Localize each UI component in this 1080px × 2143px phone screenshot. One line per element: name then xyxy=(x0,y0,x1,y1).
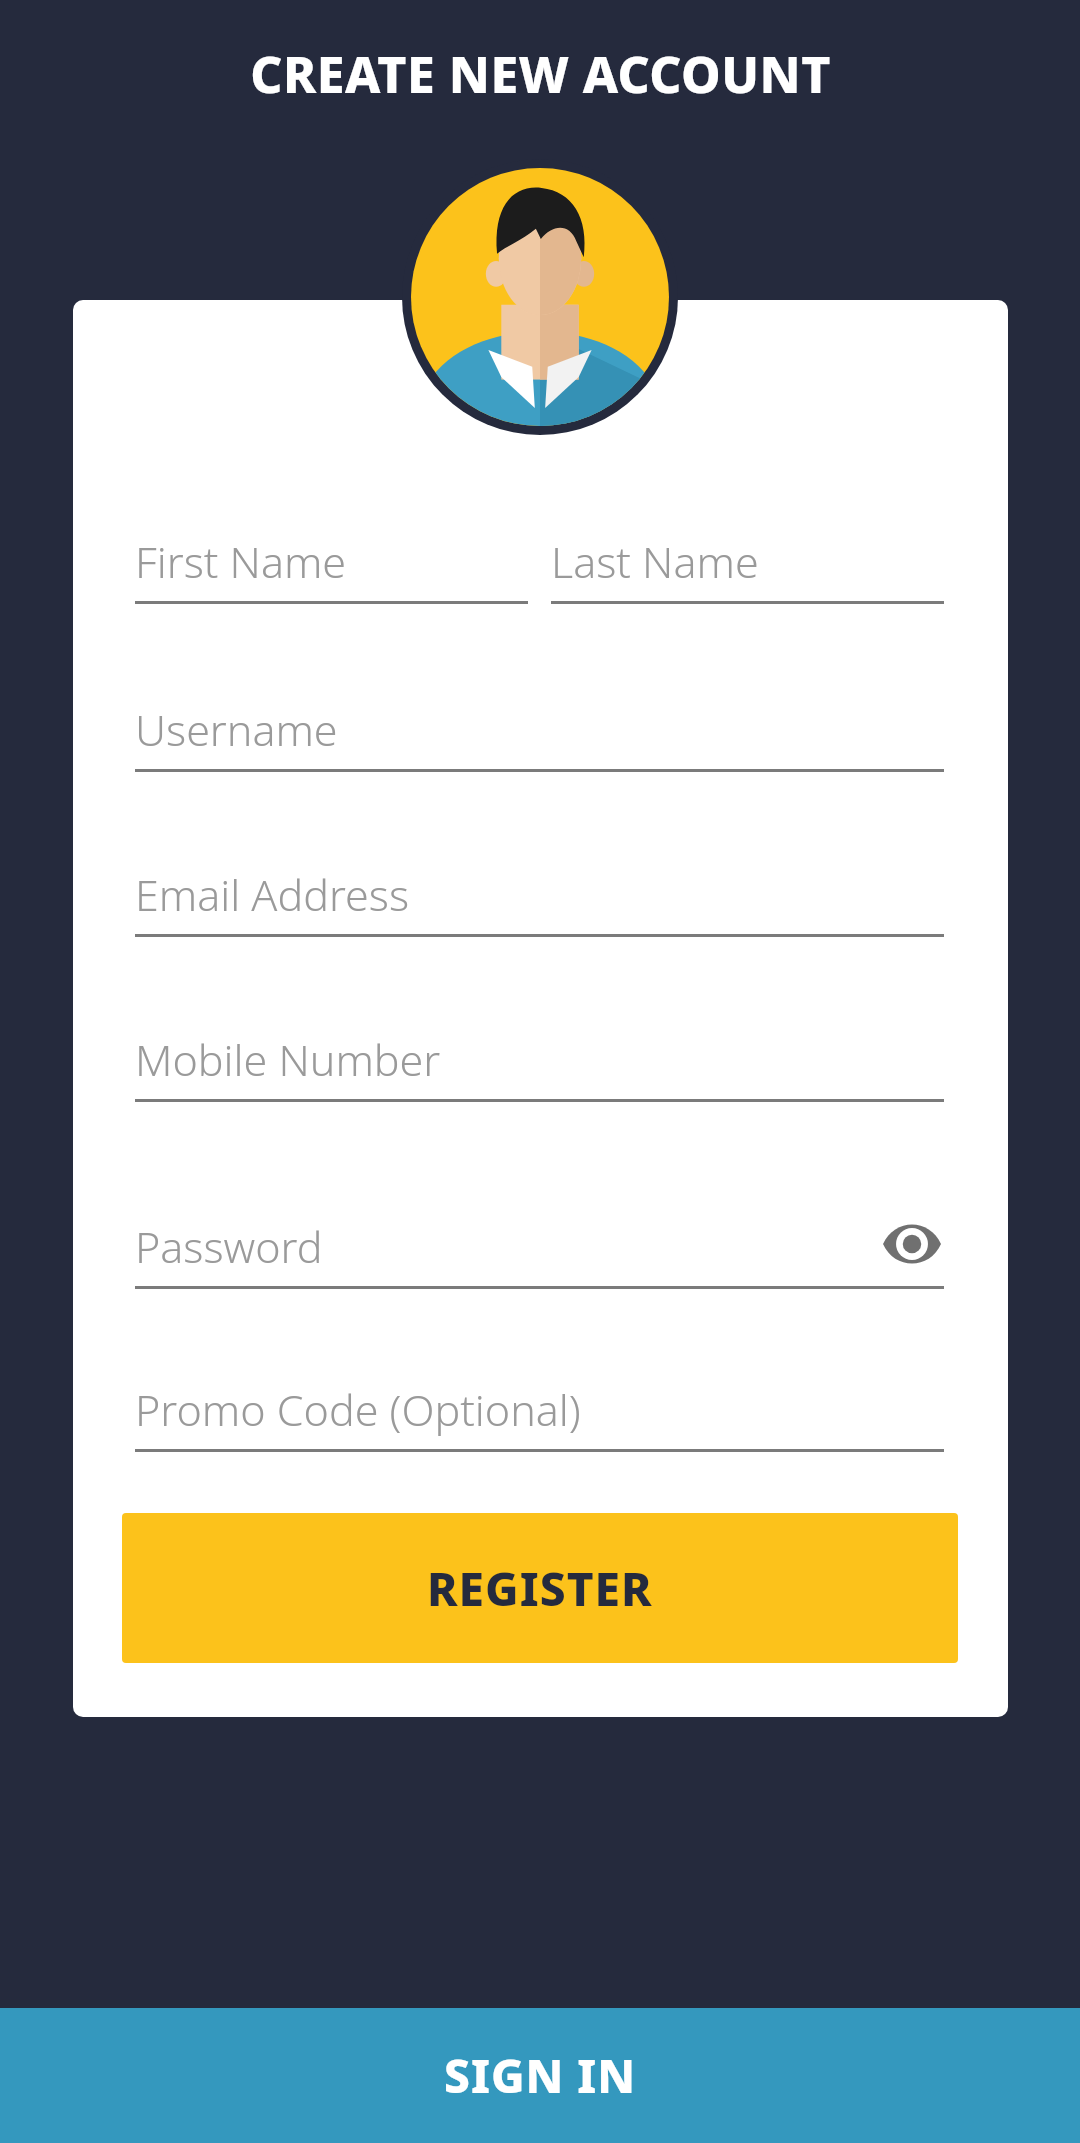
button[interactable]: First Name xyxy=(135,526,528,604)
button[interactable]: Username xyxy=(135,694,944,772)
button[interactable]: REGISTER xyxy=(122,1513,958,1663)
button[interactable]: Show password xyxy=(880,1212,944,1276)
button[interactable]: Profile photo xyxy=(402,159,678,435)
staticText: Username xyxy=(135,700,338,759)
button[interactable]: Mobile Number xyxy=(135,1024,944,1102)
staticText: Last Name xyxy=(551,532,759,591)
staticText: First Name xyxy=(135,532,347,591)
staticText: REGISTER xyxy=(427,1557,653,1620)
button[interactable]: SIGN IN xyxy=(0,2008,1080,2143)
staticText: Email Address xyxy=(135,865,410,924)
button[interactable]: Email Address xyxy=(135,859,944,937)
button[interactable]: Last Name xyxy=(551,526,944,604)
staticText: SIGN IN xyxy=(444,2044,637,2107)
button[interactable]: Promo Code (Optional) xyxy=(135,1374,944,1452)
button[interactable]: Password xyxy=(135,1211,944,1289)
staticText: Password xyxy=(135,1217,323,1276)
staticText: Mobile Number xyxy=(135,1030,441,1089)
staticText: Promo Code (Optional) xyxy=(135,1380,581,1439)
staticText: CREATE NEW ACCOUNT xyxy=(250,40,831,108)
